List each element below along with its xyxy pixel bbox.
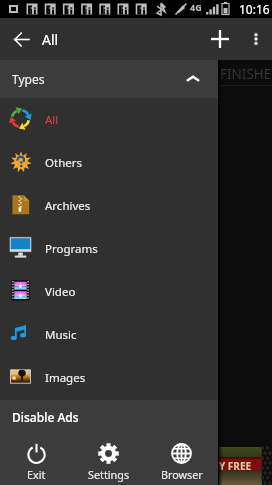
button[interactable]: Video: [0, 270, 218, 313]
button[interactable]: Add: [200, 18, 240, 60]
staticText: Images: [45, 370, 86, 386]
button[interactable]: Others: [0, 141, 218, 184]
staticText: All: [45, 112, 59, 128]
staticText: Types: [12, 71, 45, 87]
staticText: Browser: [161, 467, 203, 482]
staticText: Settings: [88, 467, 130, 482]
button[interactable]: Images: [0, 356, 218, 399]
button[interactable]: Browser: [145, 434, 218, 485]
staticText: Video: [45, 284, 76, 300]
staticText: All: [42, 30, 59, 49]
button[interactable]: Exit: [0, 434, 72, 485]
button[interactable]: Disable Ads: [0, 400, 218, 434]
staticText: Programs: [45, 241, 98, 257]
staticText: Others: [45, 155, 82, 171]
staticText: Archives: [45, 198, 91, 214]
button[interactable]: More options: [240, 18, 272, 60]
staticText: FINISHED: [220, 65, 272, 83]
staticText: Y FREE: [219, 459, 252, 473]
button[interactable]: Archives: [0, 184, 218, 227]
button[interactable]: Programs: [0, 227, 218, 270]
button[interactable]: Back: [0, 18, 42, 60]
button[interactable]: All: [0, 98, 218, 141]
button[interactable]: Music: [0, 313, 218, 356]
staticText: 4G: [190, 1, 202, 13]
staticText: Disable Ads: [12, 409, 79, 425]
staticText: Exit: [27, 467, 46, 482]
staticText: Music: [45, 327, 77, 343]
button[interactable]: Settings: [72, 434, 145, 485]
button[interactable]: Types: [0, 60, 218, 98]
staticText: 10:16: [239, 1, 270, 17]
